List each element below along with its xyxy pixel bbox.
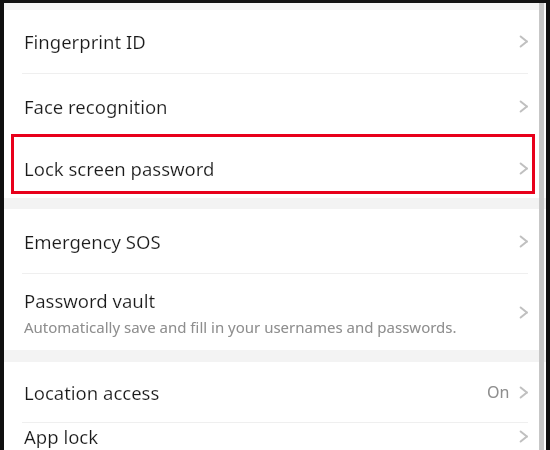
staticText: Emergency SOS: [24, 229, 161, 254]
button[interactable]: Face recognition: [4, 74, 546, 138]
button[interactable]: Lock screen password: [4, 138, 546, 198]
button[interactable]: Password vault: [4, 274, 546, 350]
staticText: Lock screen password: [24, 156, 215, 181]
staticText: On: [487, 381, 510, 403]
staticText: Face recognition: [24, 94, 168, 119]
staticText: Automatically save and fill in your user…: [24, 317, 457, 337]
staticText: Location access: [24, 380, 160, 405]
button[interactable]: App lock: [4, 423, 546, 450]
button[interactable]: Location access: [4, 362, 546, 422]
staticText: App lock: [24, 424, 99, 449]
button[interactable]: Emergency SOS: [4, 209, 546, 273]
staticText: Fingerprint ID: [24, 29, 146, 54]
button[interactable]: Fingerprint ID: [4, 10, 546, 73]
staticText: Password vault: [24, 288, 156, 313]
